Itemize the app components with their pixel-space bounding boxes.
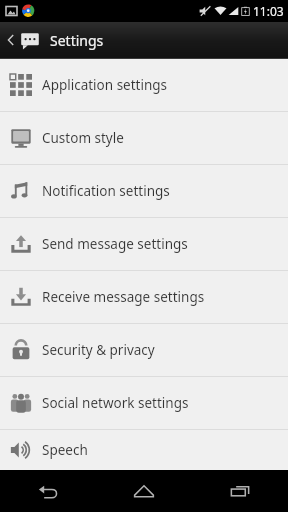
button[interactable]: Back (0, 470, 96, 512)
staticText: Speech (42, 441, 88, 459)
button[interactable]: Speech (0, 430, 288, 470)
staticText: Application settings (42, 76, 168, 94)
staticText: Social network settings (42, 394, 189, 412)
staticText: Notification settings (42, 182, 170, 200)
button[interactable]: Application settings (0, 59, 288, 111)
staticText: 11:03 (253, 3, 284, 19)
staticText: Settings (50, 31, 104, 50)
button[interactable]: Home (96, 470, 192, 512)
button[interactable]: Social network settings (0, 377, 288, 429)
button[interactable]: Settings (0, 22, 288, 58)
button[interactable]: Custom style (0, 112, 288, 164)
staticText: Receive message settings (42, 288, 205, 306)
staticText: Custom style (42, 129, 124, 147)
staticText: Send message settings (42, 235, 188, 253)
button[interactable]: Notification settings (0, 165, 288, 217)
button[interactable]: Receive message settings (0, 271, 288, 323)
staticText: Security & privacy (42, 341, 155, 359)
button[interactable]: Security & privacy (0, 324, 288, 376)
button[interactable]: Send message settings (0, 218, 288, 270)
button[interactable]: Recent apps (192, 470, 288, 512)
